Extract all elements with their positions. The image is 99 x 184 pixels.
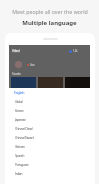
staticText: Meet people all over the world — [12, 8, 88, 15]
staticText: English — [14, 90, 25, 95]
button[interactable]: Korean — [15, 106, 87, 115]
staticText: Favorite — [12, 72, 21, 76]
staticText: Vietnam — [15, 145, 25, 149]
button[interactable]: Japanese — [15, 115, 87, 124]
staticText: Global — [15, 100, 23, 104]
staticText: Spanish — [15, 154, 24, 158]
button[interactable]: Portuguese — [15, 160, 87, 169]
staticText: Live — [30, 63, 35, 67]
staticText: 1.2k — [73, 49, 78, 53]
button[interactable]: Chinese (Taiwan) — [15, 133, 87, 142]
staticText: Chinese (China) — [15, 127, 33, 131]
button[interactable]: Global — [15, 97, 87, 106]
button[interactable]: Chinese (China) — [15, 124, 87, 133]
button[interactable]: Poland — [12, 49, 20, 53]
staticText: Indian — [15, 172, 23, 176]
button[interactable]: Indian — [15, 169, 87, 178]
staticText: Portuguese — [15, 163, 29, 167]
staticText: Japanese — [15, 118, 26, 122]
staticText: Chinese (Taiwan) — [15, 136, 34, 140]
button[interactable]: Spanish — [15, 151, 87, 160]
button[interactable]: Vietnam — [15, 142, 87, 151]
staticText: Poland — [12, 49, 20, 53]
staticText: Multiple language — [22, 19, 77, 27]
button[interactable]: 1.2k — [69, 49, 78, 53]
staticText: Korean — [15, 109, 24, 113]
